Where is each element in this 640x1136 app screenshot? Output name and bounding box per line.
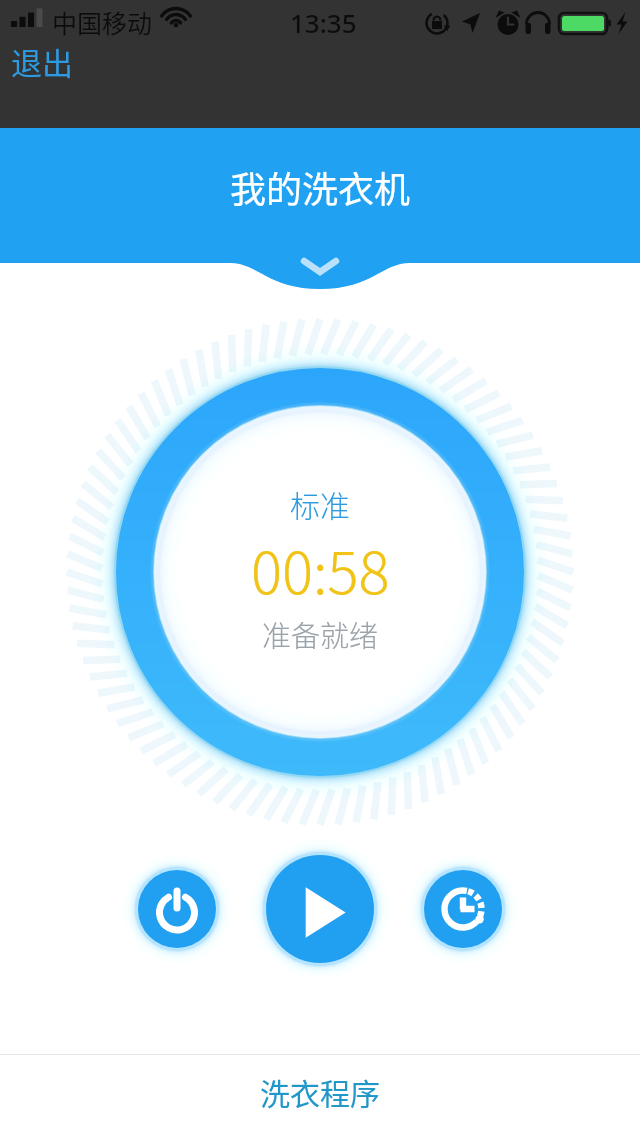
staticText: 标准 xyxy=(290,482,350,525)
button[interactable]: Timer xyxy=(424,870,502,948)
button[interactable]: Expand xyxy=(290,246,350,282)
staticText: 洗衣程序 xyxy=(260,1070,380,1113)
button[interactable]: Start xyxy=(266,855,374,963)
button[interactable]: 退出 xyxy=(6,36,78,87)
staticText: 00:58 xyxy=(251,527,390,611)
staticText: 准备就绪 xyxy=(262,613,379,655)
staticText: 我的洗衣机 xyxy=(230,161,411,213)
button[interactable]: Power xyxy=(138,870,216,948)
staticText: 13:35 xyxy=(290,5,357,40)
staticText: 退出 xyxy=(11,39,73,84)
button[interactable]: 洗衣程序 xyxy=(0,1054,640,1136)
staticText: 中国移动 xyxy=(52,4,153,40)
